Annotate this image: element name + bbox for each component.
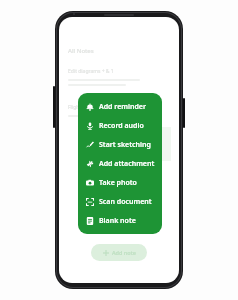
button[interactable]: Blank note <box>78 211 162 230</box>
button[interactable]: Take photo <box>78 173 162 192</box>
staticText: Scan document <box>99 197 152 207</box>
button[interactable]: Add reminder <box>78 97 162 116</box>
button[interactable]: Start sketching <box>78 135 162 154</box>
staticText: Flight <box>68 104 82 111</box>
button[interactable]: Add note <box>91 244 147 261</box>
staticText: Edit diagrams + & 1 <box>68 68 114 75</box>
staticText: Start sketching <box>99 140 151 150</box>
staticText: Take photo <box>99 178 137 188</box>
staticText: Blank note <box>99 216 136 226</box>
button[interactable]: Scan document <box>78 192 162 211</box>
button[interactable]: Add attachment <box>78 154 162 173</box>
staticText: Add note <box>112 249 136 256</box>
staticText: All Notes <box>68 47 94 55</box>
button[interactable]: Record audio <box>78 116 162 135</box>
staticText: Record audio <box>99 121 144 131</box>
staticText: Add attachment <box>99 159 155 169</box>
staticText: Add reminder <box>99 102 146 112</box>
